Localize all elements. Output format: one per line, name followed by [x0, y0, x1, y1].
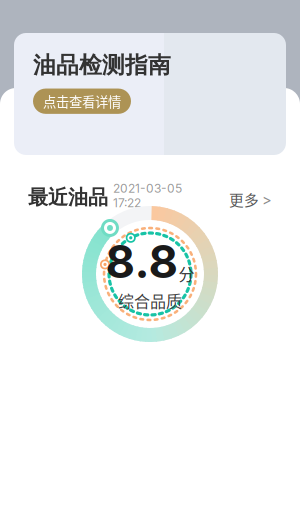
button[interactable]: 点击查看详情 [33, 89, 131, 114]
staticText: 油品检测指南 [33, 51, 171, 80]
staticText: 分 [178, 262, 194, 285]
staticText: > [262, 190, 272, 208]
staticText: 综合品质 [118, 289, 182, 312]
staticText: 最近油品 [28, 185, 108, 210]
staticText: 2021-03-05 17:22 [113, 181, 182, 210]
staticText: 8.8 [105, 234, 178, 289]
staticText: 更多 [229, 189, 259, 210]
button[interactable]: 更多 [229, 189, 272, 210]
staticText: 点击查看详情 [43, 92, 121, 111]
